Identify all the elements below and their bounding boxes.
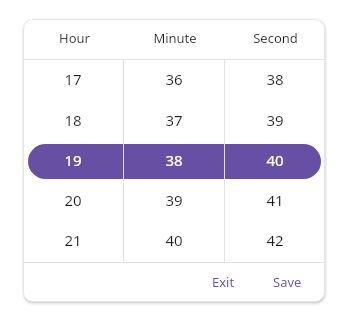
staticText: Hour (59, 29, 90, 47)
staticText: 40 (266, 150, 284, 170)
button[interactable]: 19 (23, 142, 123, 182)
staticText: 19 (64, 150, 82, 170)
button[interactable]: 37 (123, 101, 224, 142)
staticText: 36 (165, 69, 183, 89)
button[interactable]: 17 (23, 60, 123, 101)
button[interactable]: 36 (123, 60, 224, 101)
staticText: 41 (266, 190, 284, 210)
button[interactable]: 40 (123, 222, 224, 262)
button[interactable]: 20 (23, 182, 123, 222)
button[interactable]: 38 (123, 142, 224, 182)
button[interactable]: Save (263, 268, 312, 298)
button[interactable]: 21 (23, 222, 123, 262)
button[interactable]: 39 (224, 101, 325, 142)
staticText: 39 (266, 110, 284, 130)
staticText: 38 (266, 69, 284, 89)
staticText: 37 (165, 110, 183, 130)
button[interactable]: 41 (224, 182, 325, 222)
staticText: 38 (165, 150, 183, 170)
staticText: 39 (165, 190, 183, 210)
staticText: Exit (212, 273, 235, 291)
button[interactable]: 40 (224, 142, 325, 182)
button[interactable]: 42 (224, 222, 325, 262)
button[interactable]: 38 (224, 60, 325, 101)
button[interactable]: Exit (202, 268, 245, 298)
staticText: 17 (64, 69, 82, 89)
button[interactable]: Hour (23, 19, 123, 59)
staticText: Save (273, 273, 302, 291)
staticText: 21 (64, 230, 82, 250)
staticText: 40 (165, 230, 183, 250)
staticText: 42 (266, 230, 284, 250)
staticText: 18 (64, 110, 82, 130)
staticText: 20 (64, 190, 82, 210)
button[interactable]: Second (224, 19, 325, 59)
staticText: Minute (153, 29, 197, 47)
staticText: Second (253, 29, 298, 47)
button[interactable]: Minute (123, 19, 224, 59)
button[interactable]: 18 (23, 101, 123, 142)
button[interactable]: 39 (123, 182, 224, 222)
